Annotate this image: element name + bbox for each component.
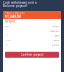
staticText: Cash withdrawal and a — [3, 1, 37, 4]
staticText: $1,240.00 — [52, 44, 59, 46]
staticText: Instant — [53, 26, 59, 27]
staticText: Payout amount — [5, 11, 25, 15]
staticText: Details — [5, 20, 15, 23]
staticText: To — [5, 30, 7, 32]
staticText: $0.00 — [55, 35, 59, 37]
staticText: Balance payout? — [3, 4, 27, 8]
staticText: Fee — [5, 35, 8, 37]
staticText: Arrives — [5, 39, 11, 41]
staticText: Total — [5, 44, 8, 46]
staticText: Confirm payout — [20, 53, 43, 56]
staticText: Chase 1842 — [50, 30, 59, 32]
staticText: $1,240.00 — [5, 13, 21, 19]
staticText: Oct 12 — [54, 39, 59, 41]
staticText: Method — [5, 26, 10, 27]
button[interactable]: Confirm payout — [5, 52, 59, 58]
